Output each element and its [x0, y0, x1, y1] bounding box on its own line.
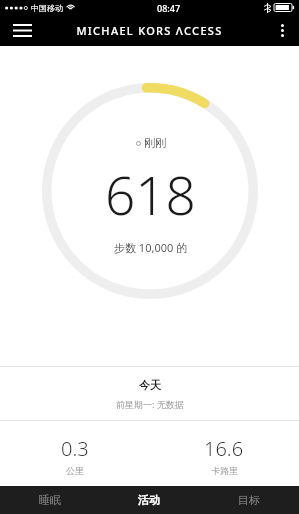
staticText: 目标	[238, 493, 260, 507]
button[interactable]: Open navigation menu	[0, 15, 44, 46]
staticText: 刚刚	[144, 136, 166, 150]
button[interactable]: 睡眠	[0, 486, 99, 514]
button[interactable]: More options	[265, 15, 299, 46]
button[interactable]: 0.3	[0, 435, 149, 476]
staticText: 618	[105, 158, 196, 230]
staticText: 公里	[66, 465, 84, 476]
button[interactable]: 16.6	[149, 435, 299, 476]
staticText: MICHAEL KORS ΛCCESS	[76, 23, 223, 38]
staticText: 0.3	[61, 435, 89, 462]
staticText: 步数 10,000 的	[114, 240, 188, 255]
staticText: 中国移动	[31, 3, 63, 13]
staticText: 活动	[138, 493, 160, 507]
staticText: 前星期一: 无数据	[116, 398, 184, 410]
staticText: 睡眠	[39, 493, 61, 507]
staticText: 16.6	[204, 435, 244, 462]
staticText: 卡路里	[211, 465, 238, 476]
staticText: 今天	[139, 378, 161, 392]
staticText: 08:47	[157, 2, 181, 14]
button[interactable]: 目标	[199, 486, 299, 514]
button[interactable]: 活动	[99, 486, 199, 514]
